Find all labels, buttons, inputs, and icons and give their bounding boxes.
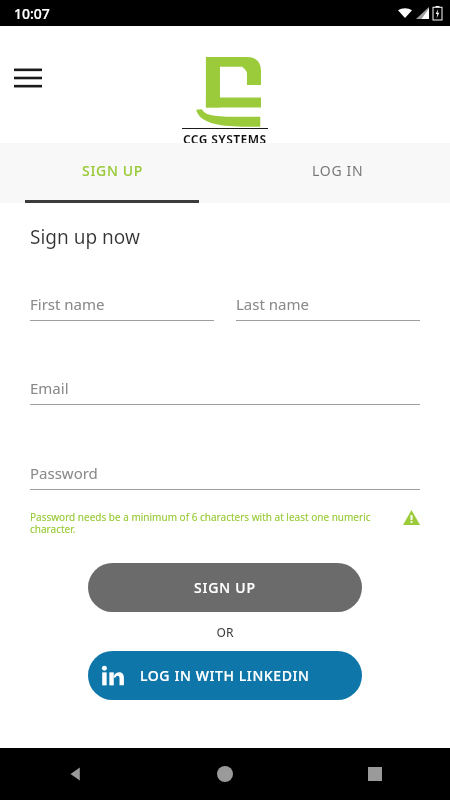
staticText: Last name <box>236 294 309 314</box>
button[interactable]: SIGN UP <box>0 143 225 203</box>
button[interactable]: Email <box>30 378 420 405</box>
staticText: Email <box>30 378 69 398</box>
button[interactable]: LOG IN <box>225 143 450 203</box>
staticText: Sign up now <box>30 224 140 250</box>
staticText: CCG SYSTEMS <box>183 131 267 143</box>
staticText: SIGN UP <box>82 161 144 180</box>
staticText: SIGN UP <box>194 578 256 597</box>
other: Warning <box>403 510 420 525</box>
staticText: OR <box>30 624 420 640</box>
staticText: 10:07 <box>14 4 50 23</box>
button[interactable]: Password <box>30 463 420 490</box>
staticText: Password needs be a minimum of 6 charact… <box>30 510 393 536</box>
staticText: LOG IN WITH LINKEDIN <box>140 666 310 685</box>
button[interactable]: Home <box>150 748 300 800</box>
staticText: First name <box>30 294 105 314</box>
button[interactable]: Recent apps <box>300 748 450 800</box>
staticText: Password <box>30 463 98 483</box>
button[interactable]: First name <box>30 294 214 321</box>
staticText: LOG IN <box>312 161 364 180</box>
button[interactable]: Open navigation menu <box>6 56 50 100</box>
button[interactable]: LOG IN WITH LINKEDIN <box>88 651 362 700</box>
button[interactable]: Back <box>0 748 150 800</box>
button[interactable]: SIGN UP <box>88 563 362 612</box>
button[interactable]: Last name <box>236 294 420 321</box>
